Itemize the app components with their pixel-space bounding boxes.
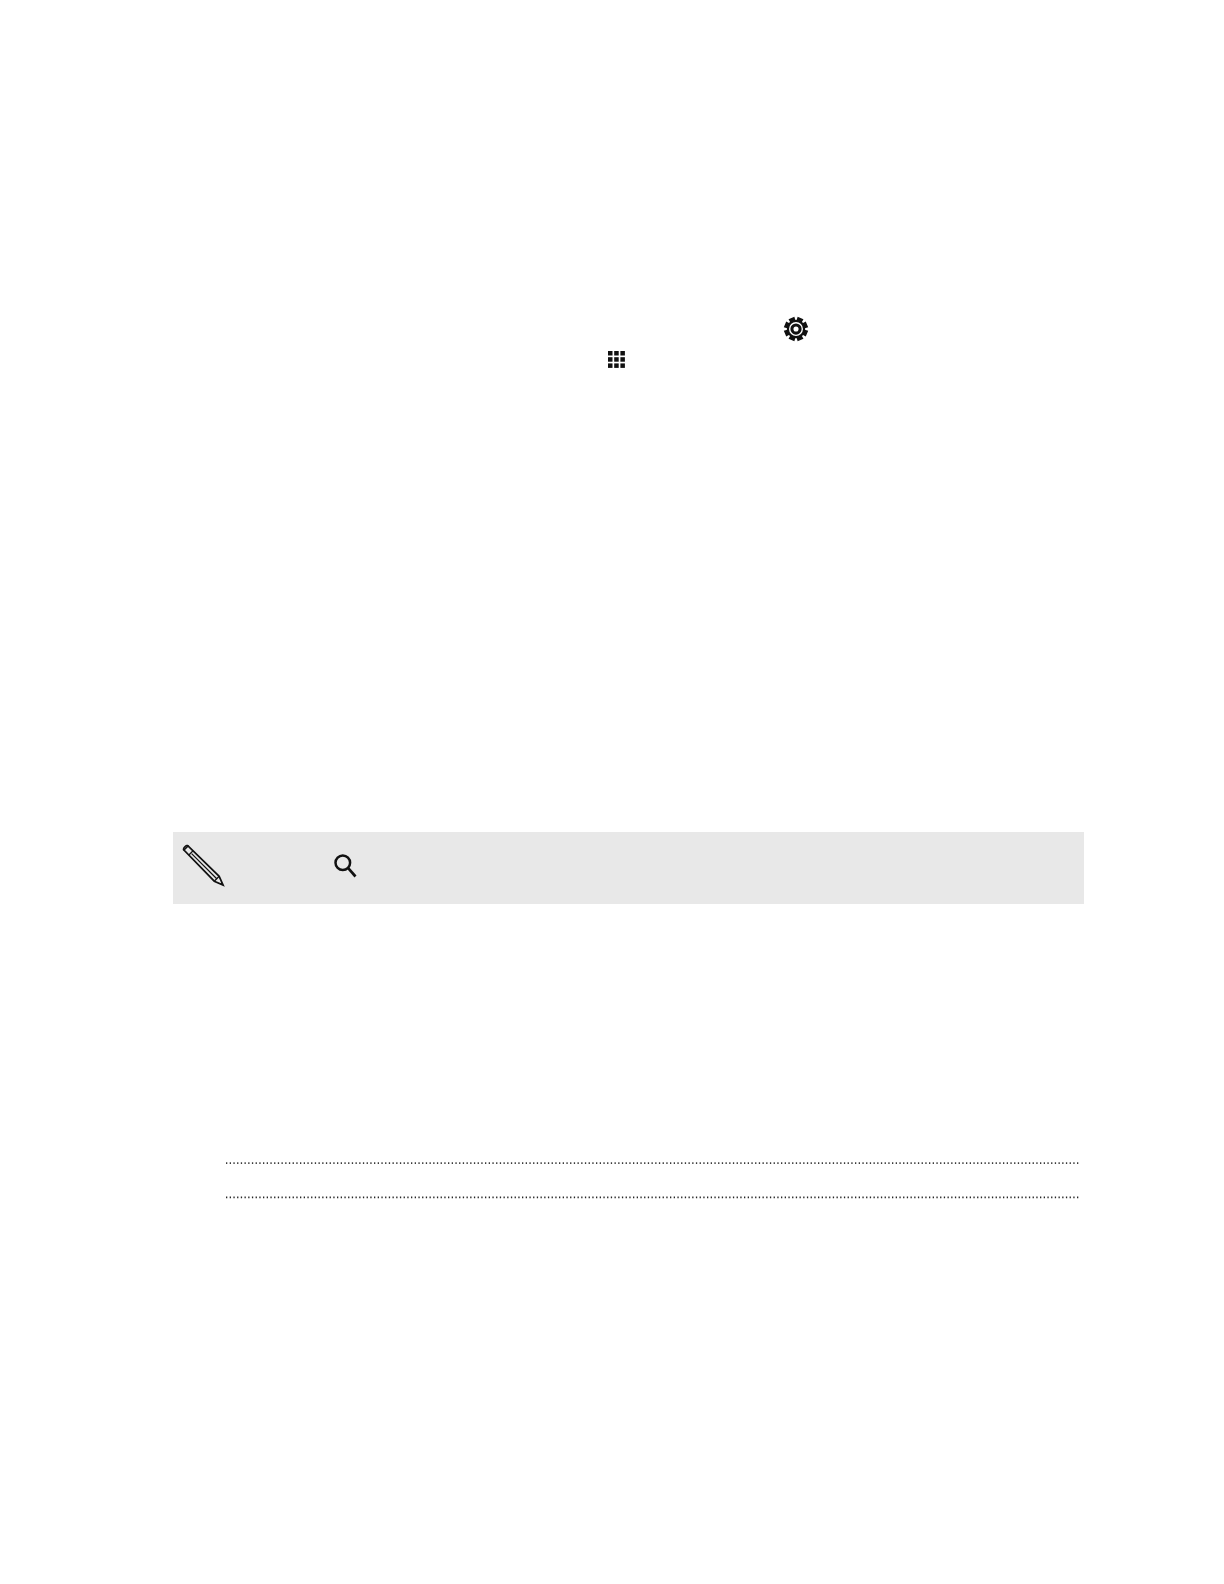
button[interactable]: Edit [178, 840, 234, 896]
button[interactable]: Apps [592, 335, 640, 383]
button[interactable]: Search [315, 834, 371, 890]
button[interactable]: Settings [772, 305, 820, 353]
